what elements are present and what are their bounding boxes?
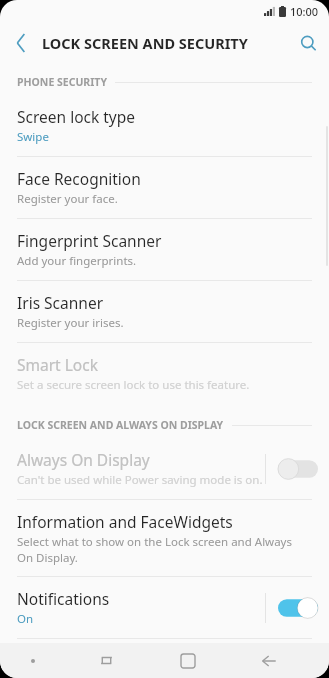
staticText: LOCK SCREEN AND ALWAYS ON DISPLAY bbox=[17, 418, 224, 432]
button[interactable]: Always On Display bbox=[0, 438, 329, 499]
button[interactable]: Face Recognition bbox=[0, 157, 329, 218]
staticText: Face Recognition bbox=[17, 168, 141, 189]
staticText: LOCK SCREEN AND SECURITY bbox=[42, 33, 248, 53]
staticText: Smart Lock bbox=[17, 354, 98, 375]
staticText: Iris Scanner bbox=[17, 292, 104, 313]
button[interactable]: Search bbox=[287, 22, 329, 64]
staticText: On bbox=[17, 611, 34, 627]
button[interactable]: Smart Lock bbox=[0, 343, 329, 404]
button[interactable]: Iris Scanner bbox=[0, 281, 329, 342]
staticText: Register your irises. bbox=[17, 315, 124, 331]
staticText: Fingerprint Scanner bbox=[17, 230, 162, 251]
staticText: Always On Display bbox=[17, 449, 150, 470]
staticText: Register your face. bbox=[17, 191, 118, 207]
staticText: Screen lock type bbox=[17, 106, 136, 127]
button[interactable]: Information and FaceWidgets bbox=[0, 500, 329, 576]
button[interactable]: Back bbox=[228, 643, 309, 678]
button[interactable]: Home bbox=[147, 643, 228, 678]
staticText: Can't be used while Power saving mode is… bbox=[17, 472, 263, 488]
button[interactable]: Fingerprint Scanner bbox=[0, 219, 329, 280]
staticText: Notifications bbox=[17, 588, 110, 609]
staticText: Information and FaceWidgets bbox=[17, 511, 233, 532]
staticText: Swipe bbox=[17, 129, 49, 145]
staticText: 10:00 bbox=[290, 4, 319, 19]
staticText: Select what to show on the Lock screen a… bbox=[17, 534, 292, 565]
staticText: Add your fingerprints. bbox=[17, 253, 137, 269]
button[interactable]: Back bbox=[0, 22, 42, 64]
staticText: Set a secure screen lock to use this fea… bbox=[17, 377, 250, 393]
button[interactable]: Screen lock type bbox=[0, 95, 329, 156]
button[interactable]: Toggle on bbox=[278, 597, 318, 619]
button[interactable]: Notifications bbox=[0, 577, 329, 638]
button[interactable]: Toggle off bbox=[278, 458, 318, 480]
staticText: PHONE SECURITY bbox=[17, 75, 107, 89]
button[interactable]: Recents bbox=[66, 643, 147, 678]
